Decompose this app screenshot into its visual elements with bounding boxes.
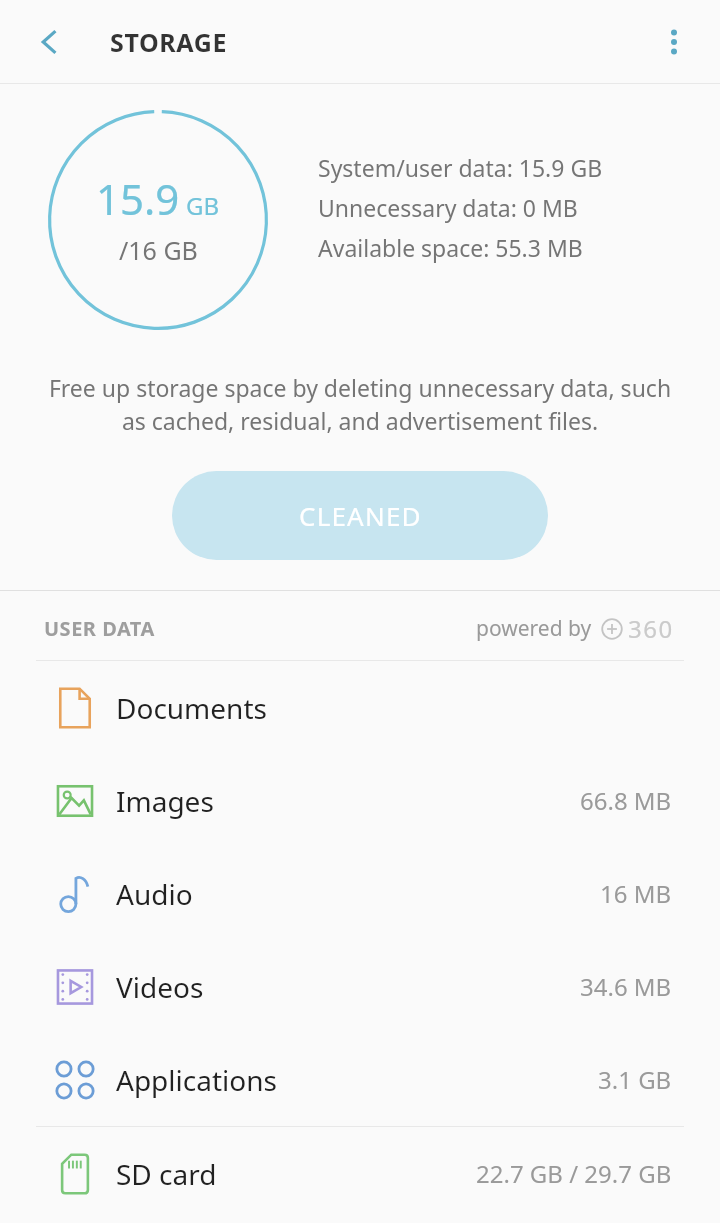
staticText: /16 GB [119,233,198,267]
button[interactable]: Back [18,10,82,74]
staticText: Available space: 55.3 MB [318,232,583,263]
staticText: SD card [116,1155,217,1193]
staticText: USER DATA [44,615,155,642]
staticText: Unnecessary data: 0 MB [318,192,578,223]
button[interactable]: Applications [0,1033,720,1126]
staticText: STORAGE [110,25,227,59]
staticText: Applications [116,1061,277,1099]
staticText: Audio [116,875,193,913]
staticText: System/user data: 15.9 GB [318,152,603,183]
button[interactable]: Images [0,754,720,847]
button[interactable]: CLEANED [172,471,548,560]
staticText: Images [116,782,214,820]
staticText: 360 [628,612,674,645]
button[interactable]: Videos [0,940,720,1033]
button[interactable]: More options [644,12,704,72]
staticText: 3.1 GB [598,1063,672,1096]
staticText: powered by [476,614,592,643]
staticText: 22.7 GB / 29.7 GB [476,1157,672,1190]
staticText: 15.9 [96,170,180,227]
staticText: Documents [116,689,267,727]
staticText: CLEANED [299,498,422,533]
button[interactable]: Audio [0,847,720,940]
staticText: GB [186,189,220,222]
button[interactable]: Documents [0,661,720,754]
button[interactable]: SD card [0,1127,720,1220]
staticText: Videos [116,968,204,1006]
staticText: Free up storage space by deleting unnece… [44,372,676,437]
staticText: 66.8 MB [580,784,672,817]
staticText: 34.6 MB [580,970,672,1003]
staticText: 16 MB [600,877,672,910]
